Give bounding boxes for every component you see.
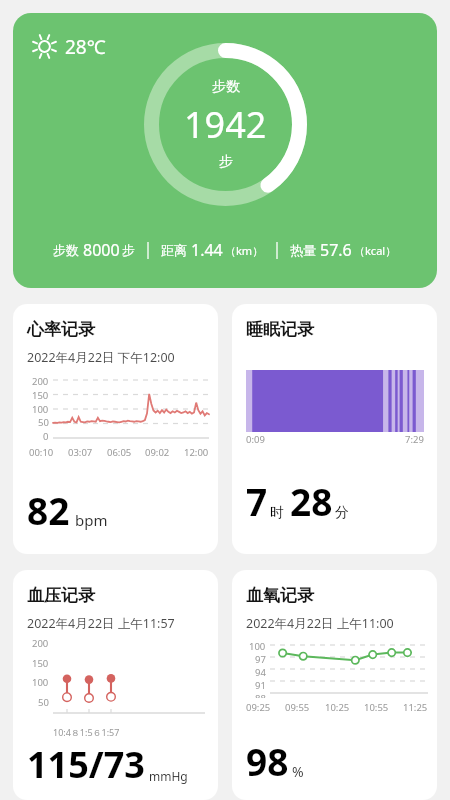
staticText: （km） [225, 243, 264, 258]
button[interactable]: 血压记录 [13, 570, 218, 800]
staticText: 88 [255, 692, 266, 698]
staticText: 200 [32, 637, 49, 650]
staticText: 12:00 [184, 446, 209, 459]
button[interactable]: 睡眠记录 [232, 304, 437, 554]
staticText: 热量 [290, 242, 316, 258]
staticText: 100 [32, 676, 49, 689]
staticText: 50 [38, 416, 49, 429]
staticText: 7 [246, 476, 268, 526]
staticText: 28℃ [65, 34, 106, 60]
staticText: 心率记录 [27, 319, 95, 340]
staticText: 血氧记录 [246, 585, 314, 606]
staticText: 97 [255, 653, 266, 666]
staticText: % [292, 762, 304, 781]
staticText: 10:25 [325, 701, 350, 714]
staticText: 82 [27, 485, 70, 535]
staticText: 200 [32, 375, 49, 388]
staticText: 2022年4月22日 上午11:00 [246, 615, 394, 632]
staticText: 1942 [184, 100, 267, 149]
staticText: 8000 [83, 239, 120, 261]
staticText: 分 [335, 504, 349, 522]
button[interactable]: 心率记录 [13, 304, 218, 554]
staticText: 09:55 [285, 701, 310, 714]
staticText: 0:09 [246, 433, 265, 446]
staticText: 100 [32, 403, 49, 416]
staticText: 98 [246, 736, 289, 786]
staticText: bpm [75, 510, 108, 530]
staticText: 10:4８1:5６1:57 [53, 726, 120, 738]
staticText: 00:10 [29, 446, 54, 459]
staticText: mmHg [149, 768, 188, 784]
staticText: 94 [255, 666, 266, 679]
staticText: 血压记录 [27, 585, 95, 606]
staticText: 0 [43, 430, 49, 443]
staticText: 1.44 [191, 239, 223, 261]
button[interactable]: 28℃ [13, 13, 437, 288]
staticText: 06:05 [107, 446, 132, 459]
staticText: 步数 [53, 242, 79, 258]
staticText: 03:07 [68, 446, 93, 459]
staticText: 步 [122, 242, 135, 258]
staticText: 2022年4月22日 上午11:57 [27, 615, 175, 632]
staticText: 150 [32, 657, 49, 670]
staticText: 28 [290, 476, 333, 526]
staticText: 57.6 [320, 239, 352, 261]
staticText: 步数 [212, 78, 240, 96]
staticText: 距离 [161, 242, 187, 258]
staticText: （kcal） [354, 243, 397, 258]
staticText: 睡眠记录 [246, 319, 314, 340]
staticText: 09:25 [246, 701, 271, 714]
staticText: 50 [38, 696, 49, 709]
staticText: 91 [255, 679, 266, 692]
staticText: 09:02 [145, 446, 170, 459]
staticText: 115/73 [27, 740, 145, 789]
staticText: 7:29 [405, 433, 424, 446]
staticText: 2022年4月22日 下午12:00 [27, 349, 175, 366]
staticText: 100 [249, 640, 266, 653]
button[interactable]: 血氧记录 [232, 570, 437, 800]
staticText: 11:25 [403, 701, 428, 714]
staticText: 步 [219, 153, 233, 171]
staticText: 时 [270, 504, 284, 522]
staticText: 150 [32, 389, 49, 402]
staticText: 10:55 [364, 701, 389, 714]
